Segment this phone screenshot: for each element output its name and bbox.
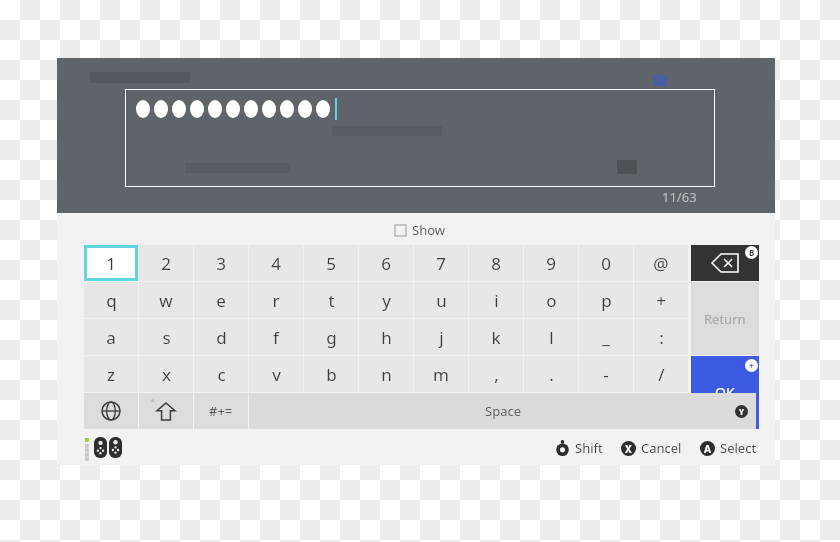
staticText: -: [603, 363, 609, 386]
button[interactable]: :: [634, 319, 688, 355]
button[interactable]: d: [194, 319, 248, 355]
button[interactable]: 6: [359, 245, 413, 281]
staticText: OK: [715, 383, 735, 402]
button[interactable]: a: [84, 319, 138, 355]
staticText: Return: [704, 310, 746, 328]
button[interactable]: /: [634, 356, 688, 392]
button[interactable]: o: [524, 282, 578, 318]
button[interactable]: k: [469, 319, 523, 355]
staticText: Shift: [575, 439, 603, 457]
button[interactable]: 8: [469, 245, 523, 281]
button[interactable]: q: [84, 282, 138, 318]
staticText: n: [381, 363, 392, 386]
staticText: 7: [436, 252, 446, 275]
button[interactable]: s: [139, 319, 193, 355]
staticText: Show: [412, 221, 445, 239]
button[interactable]: v: [249, 356, 303, 392]
button[interactable]: z: [84, 356, 138, 392]
button[interactable]: Return: [691, 282, 759, 355]
button[interactable]: b: [304, 356, 358, 392]
staticText: +: [749, 360, 754, 371]
button[interactable]: y: [359, 282, 413, 318]
staticText: q: [106, 289, 117, 312]
staticText: f: [273, 326, 279, 349]
staticText: v: [272, 363, 281, 386]
staticText: g: [326, 326, 337, 349]
staticText: Select: [720, 439, 757, 457]
button[interactable]: c: [194, 356, 248, 392]
staticText: 3: [216, 252, 226, 275]
button[interactable]: 2: [139, 245, 193, 281]
button[interactable]: 1: [84, 245, 138, 281]
staticText: c: [217, 363, 226, 386]
staticText: .: [549, 363, 554, 386]
staticText: 2: [161, 252, 171, 275]
button[interactable]: Shift: [555, 439, 603, 457]
button[interactable]: w: [139, 282, 193, 318]
staticText: 4: [271, 252, 281, 275]
button[interactable]: 5: [304, 245, 358, 281]
button[interactable]: OK: [691, 356, 759, 429]
button[interactable]: j: [414, 319, 468, 355]
staticText: l: [549, 326, 554, 349]
button[interactable]: n: [359, 356, 413, 392]
button[interactable]: -: [579, 356, 633, 392]
button[interactable]: 7: [414, 245, 468, 281]
button[interactable]: Backspace: [691, 245, 759, 281]
staticText: 6: [381, 252, 391, 275]
button[interactable]: Show: [395, 221, 445, 239]
staticText: #+=: [209, 402, 233, 420]
staticText: d: [216, 326, 227, 349]
staticText: r: [272, 289, 280, 312]
staticText: i: [494, 289, 499, 312]
button[interactable]: ,: [469, 356, 523, 392]
staticText: /: [658, 363, 665, 386]
button[interactable]: Change language: [84, 393, 138, 429]
button[interactable]: g: [304, 319, 358, 355]
staticText: X: [625, 442, 632, 456]
button[interactable]: r: [249, 282, 303, 318]
staticText: e: [216, 289, 226, 312]
button[interactable]: l: [524, 319, 578, 355]
button[interactable]: Space: [249, 393, 756, 429]
button[interactable]: p: [579, 282, 633, 318]
staticText: y: [382, 289, 391, 312]
staticText: :: [659, 326, 664, 349]
staticText: +: [656, 289, 666, 312]
staticText: t: [328, 289, 335, 312]
staticText: k: [491, 326, 501, 349]
staticText: 1: [106, 252, 116, 275]
staticText: @: [653, 252, 669, 275]
button[interactable]: +: [634, 282, 688, 318]
button[interactable]: u: [414, 282, 468, 318]
button[interactable]: .: [524, 356, 578, 392]
staticText: u: [436, 289, 447, 312]
staticText: Cancel: [641, 439, 682, 457]
button[interactable]: i: [469, 282, 523, 318]
button[interactable]: A: [700, 439, 757, 457]
button[interactable]: _: [579, 319, 633, 355]
staticText: z: [107, 363, 115, 386]
button[interactable]: 0: [579, 245, 633, 281]
button[interactable]: m: [414, 356, 468, 392]
button[interactable]: f: [249, 319, 303, 355]
button[interactable]: Shift: [139, 393, 193, 429]
button[interactable]: [125, 89, 715, 187]
button[interactable]: #+=: [194, 393, 248, 429]
button[interactable]: h: [359, 319, 413, 355]
button[interactable]: X: [621, 439, 682, 457]
button[interactable]: @: [634, 245, 688, 281]
button[interactable]: x: [139, 356, 193, 392]
staticText: w: [159, 289, 173, 312]
staticText: 0: [601, 252, 611, 275]
button[interactable]: 3: [194, 245, 248, 281]
staticText: 5: [326, 252, 336, 275]
staticText: x: [162, 363, 171, 386]
staticText: o: [546, 289, 557, 312]
staticText: _: [602, 326, 610, 349]
button[interactable]: 9: [524, 245, 578, 281]
button[interactable]: e: [194, 282, 248, 318]
button[interactable]: t: [304, 282, 358, 318]
button[interactable]: 4: [249, 245, 303, 281]
staticText: B: [749, 247, 755, 258]
